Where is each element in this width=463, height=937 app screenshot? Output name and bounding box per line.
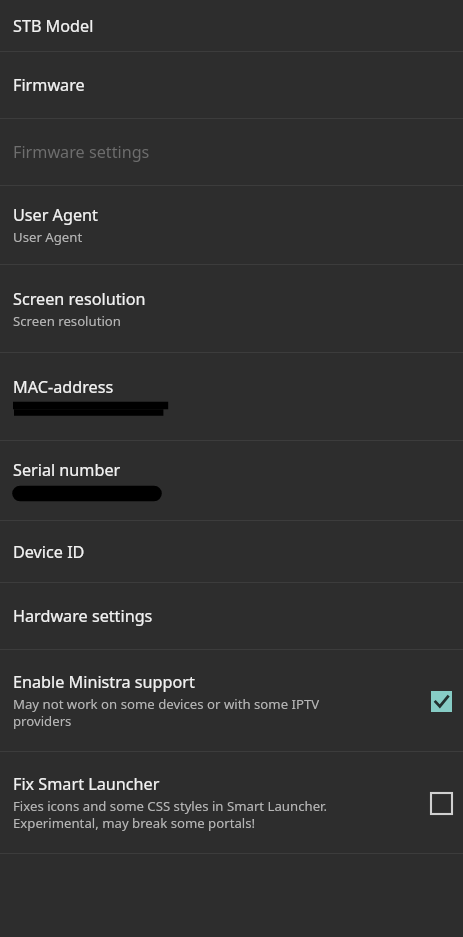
button[interactable]: MAC-address bbox=[0, 353, 463, 440]
button[interactable]: Fix Smart Launcher bbox=[0, 752, 463, 853]
staticText: Firmware bbox=[13, 74, 85, 96]
staticText: Screen resolution bbox=[13, 312, 121, 330]
staticText: Device ID bbox=[13, 541, 85, 563]
staticText: Screen resolution bbox=[13, 288, 146, 310]
staticText: Hardware settings bbox=[13, 605, 153, 627]
button[interactable]: Serial number bbox=[0, 441, 463, 520]
staticText: May not work on some devices or with som… bbox=[13, 695, 320, 730]
button[interactable]: STB Model bbox=[0, 0, 463, 51]
button[interactable]: Disabled bbox=[421, 783, 461, 823]
staticText: Firmware settings bbox=[13, 141, 150, 163]
button[interactable]: Enabled bbox=[421, 681, 461, 721]
button[interactable]: Hardware settings bbox=[0, 583, 463, 649]
button[interactable]: Firmware bbox=[0, 52, 463, 118]
staticText: Enable Ministra support bbox=[13, 671, 195, 693]
staticText: Fixes icons and some CSS styles in Smart… bbox=[13, 797, 327, 832]
staticText: User Agent bbox=[13, 204, 98, 226]
button[interactable]: Enable Ministra support bbox=[0, 650, 463, 751]
button[interactable]: Firmware settings bbox=[0, 119, 463, 185]
staticText: Fix Smart Launcher bbox=[13, 773, 160, 795]
staticText: Serial number bbox=[13, 459, 121, 481]
button[interactable]: User Agent bbox=[0, 186, 463, 264]
staticText: MAC-address bbox=[13, 376, 114, 398]
button[interactable]: Device ID bbox=[0, 521, 463, 582]
staticText: User Agent bbox=[13, 228, 83, 246]
button[interactable]: Screen resolution bbox=[0, 265, 463, 352]
staticText: STB Model bbox=[13, 15, 94, 37]
